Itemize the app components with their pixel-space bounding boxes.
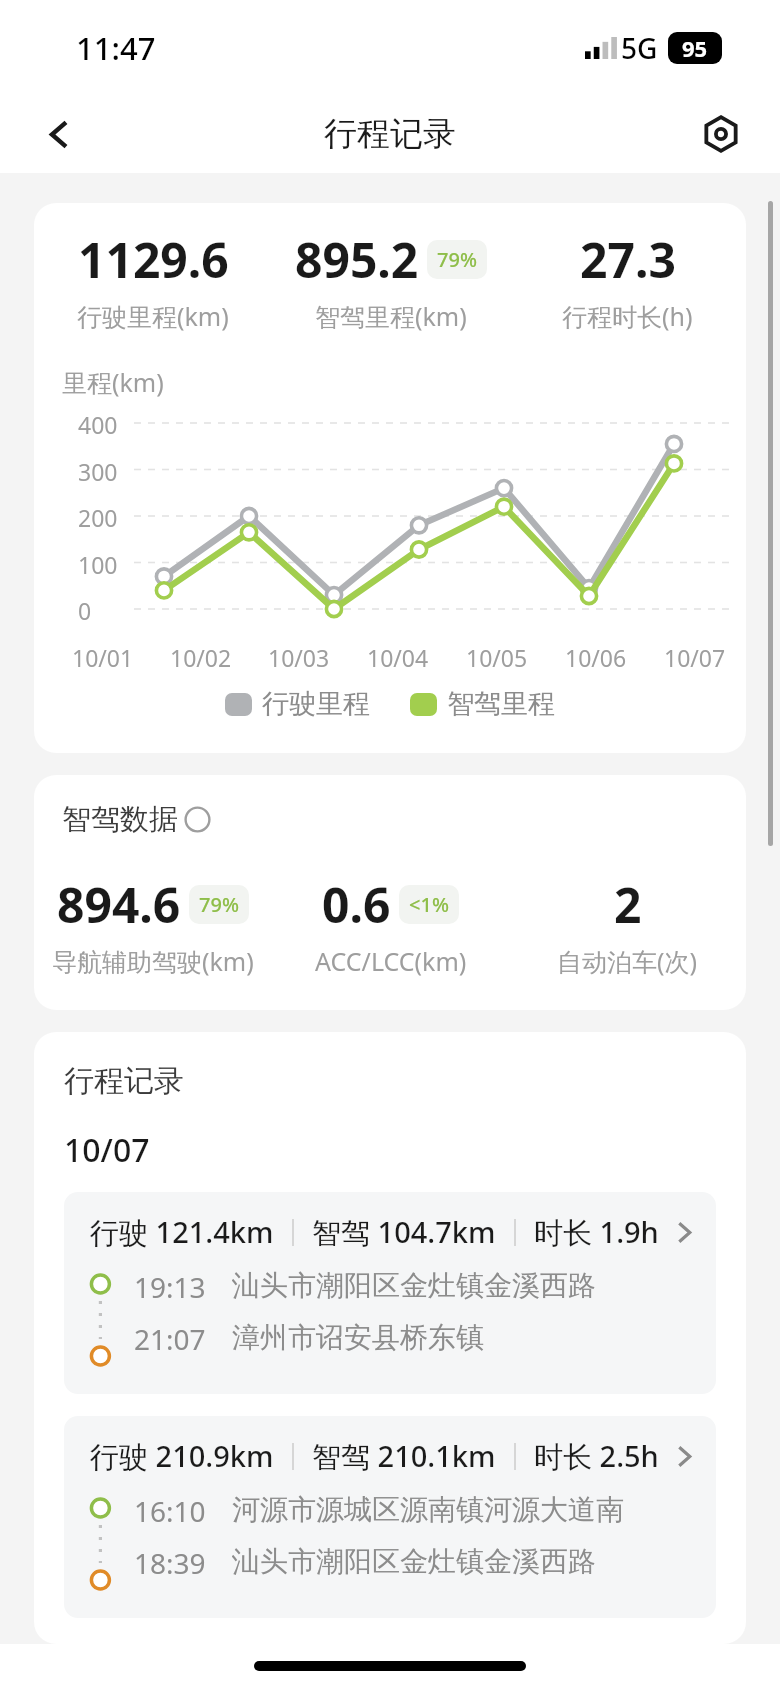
staticText: 智驾数据 xyxy=(62,801,178,838)
staticText: 时长 1.9h xyxy=(534,1212,659,1252)
staticText: 行驶里程 xyxy=(262,687,370,721)
staticText: ACC/LCC(km) xyxy=(315,944,467,978)
staticText: 智驾 104.7km xyxy=(312,1212,496,1252)
staticText: 智驾 210.1km xyxy=(312,1436,496,1476)
staticText: 10/01 xyxy=(72,642,134,673)
staticText: 10/07 xyxy=(664,642,726,673)
staticText: 智驾里程 xyxy=(447,687,555,721)
button[interactable]: Settings xyxy=(694,107,748,161)
button[interactable]: 智驾里程 xyxy=(410,687,555,721)
staticText: 河源市源城区源南镇河源大道南 xyxy=(232,1492,624,1524)
button[interactable]: 智驾数据 xyxy=(62,801,211,838)
staticText: 19:13 xyxy=(134,1268,206,1300)
staticText: 79% xyxy=(199,891,239,918)
staticText: 5G xyxy=(621,29,658,67)
staticText: 10/04 xyxy=(367,642,429,673)
staticText: 11:47 xyxy=(76,27,156,69)
staticText: 2 xyxy=(614,872,642,937)
staticText: 16:10 xyxy=(134,1492,206,1524)
button[interactable]: 行驶里程 xyxy=(225,687,370,721)
button[interactable]: Back xyxy=(32,107,86,161)
staticText: 智驾里程(km) xyxy=(315,299,467,333)
staticText: 894.6 xyxy=(57,872,181,937)
staticText: 行程记录 xyxy=(324,113,456,155)
staticText: 行程时长(h) xyxy=(562,299,693,333)
staticText: 汕头市潮阳区金灶镇金溪西路 xyxy=(232,1268,596,1300)
staticText: 导航辅助驾驶(km) xyxy=(52,944,254,978)
staticText: 27.3 xyxy=(580,227,676,292)
staticText: 10/05 xyxy=(466,642,528,673)
staticText: 300 xyxy=(78,456,118,487)
staticText: 400 xyxy=(78,409,118,440)
staticText: 漳州市诏安县桥东镇 xyxy=(232,1320,484,1352)
staticText: 10/07 xyxy=(64,1128,150,1172)
staticText: 行驶 121.4km xyxy=(90,1212,274,1252)
staticText: 行程记录 xyxy=(64,1062,184,1100)
staticText: 时长 2.5h xyxy=(534,1436,659,1476)
staticText: 200 xyxy=(78,502,118,533)
staticText: 95 xyxy=(682,33,708,63)
staticText: 0 xyxy=(78,595,92,626)
staticText: 10/02 xyxy=(170,642,232,673)
staticText: <1% xyxy=(409,891,449,918)
staticText: 10/03 xyxy=(268,642,330,673)
staticText: 行驶里程(km) xyxy=(77,299,229,333)
staticText: 79% xyxy=(437,246,477,273)
staticText: 行驶 210.9km xyxy=(90,1436,274,1476)
staticText: 0.6 xyxy=(322,872,391,937)
staticText: 10/06 xyxy=(565,642,627,673)
staticText: 汕头市潮阳区金灶镇金溪西路 xyxy=(232,1544,596,1576)
staticText: 自动泊车(次) xyxy=(557,944,698,978)
staticText: 21:07 xyxy=(134,1320,206,1352)
button[interactable]: 行驶 121.4km xyxy=(64,1192,716,1394)
staticText: 895.2 xyxy=(295,227,419,292)
staticText: 里程(km) xyxy=(62,365,164,399)
staticText: 100 xyxy=(78,549,118,580)
button[interactable]: 行驶 210.9km xyxy=(64,1416,716,1618)
staticText: 1129.6 xyxy=(78,227,229,292)
staticText: 18:39 xyxy=(134,1544,206,1576)
